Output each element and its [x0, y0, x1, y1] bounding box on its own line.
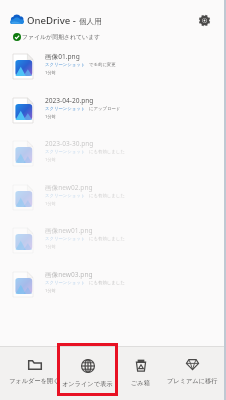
button[interactable]: プレミアムに移行 — [166, 348, 218, 398]
staticText: にアップロード — [89, 106, 121, 112]
staticText: スクリーンショット — [45, 62, 86, 68]
button[interactable]: 2023-04-20.png — [0, 96, 226, 140]
staticText: 画像new03.png — [45, 270, 93, 279]
button[interactable]: ごみ箱 — [114, 348, 166, 398]
staticText: 2023-04-20.png — [45, 96, 94, 105]
staticText: 1分前 — [45, 244, 56, 250]
staticText: 2023-03-30.png — [45, 139, 94, 148]
staticText: プレミアムに移行 — [167, 377, 218, 385]
staticText: ごみ箱 — [131, 379, 150, 387]
staticText: OneDrive - — [27, 14, 79, 27]
button[interactable]: オンラインで表示 — [61, 348, 113, 398]
staticText: スクリーンショット — [45, 106, 86, 112]
button[interactable]: フォルダーを開く — [8, 348, 60, 398]
staticText: 1分前 — [45, 114, 56, 120]
staticText: ファイルが同期されています — [22, 33, 101, 40]
button[interactable]: 2023-03-30.png — [0, 139, 226, 183]
staticText: 画像01.png — [45, 52, 80, 61]
staticText: にも有効しました — [89, 149, 125, 155]
staticText: 個人用 — [79, 17, 102, 27]
staticText: 1分前 — [45, 288, 56, 294]
staticText: フォルダーを開く — [9, 377, 60, 385]
staticText: スクリーンショット — [45, 236, 86, 242]
button[interactable]: 設定 — [194, 10, 215, 31]
staticText: にも有効しました — [89, 236, 125, 242]
staticText: 1分前 — [45, 70, 56, 76]
staticText: スクリーンショット — [45, 193, 86, 199]
staticText: 画像new02.png — [45, 183, 93, 192]
staticText: にも有効しました — [89, 280, 125, 286]
button[interactable]: 画像new03.png — [0, 270, 226, 314]
staticText: スクリーンショット — [45, 280, 86, 286]
button[interactable]: 画像new01.png — [0, 226, 226, 270]
staticText: スクリーンショット — [45, 149, 86, 155]
staticText: 画像new01.png — [45, 226, 93, 235]
staticText: 1分前 — [45, 157, 56, 163]
staticText: オンラインで表示 — [62, 380, 113, 388]
button[interactable]: 画像01.png — [0, 52, 226, 96]
staticText: にも有効しました — [89, 193, 125, 199]
staticText: でる前に変更 — [89, 62, 116, 68]
staticText: 1分前 — [45, 201, 56, 207]
button[interactable]: 画像new02.png — [0, 183, 226, 227]
